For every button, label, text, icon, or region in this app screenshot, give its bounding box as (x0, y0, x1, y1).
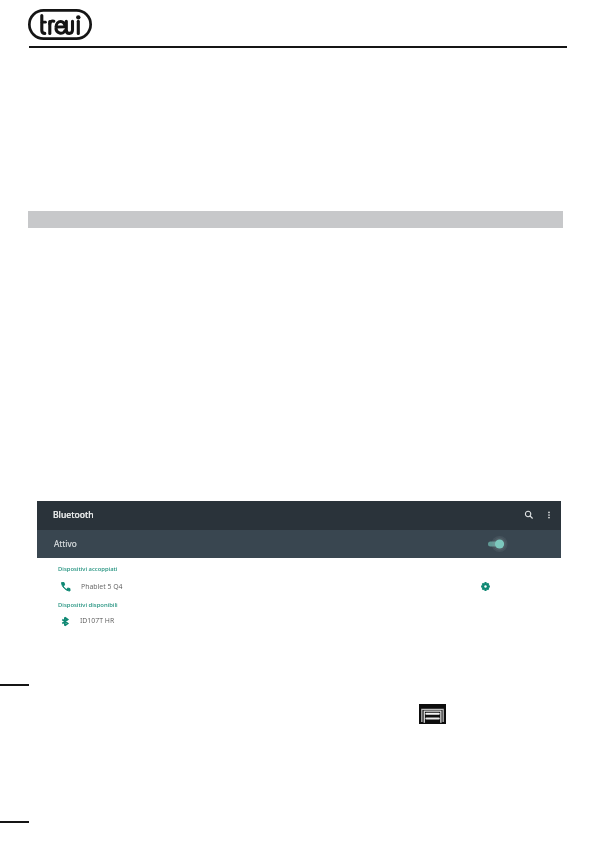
button[interactable]: Attivo (37, 530, 561, 558)
staticText: Dispositivi accoppiati (58, 565, 118, 573)
button[interactable]: Device settings (476, 578, 494, 594)
button[interactable]: Bluetooth (37, 501, 561, 530)
button[interactable]: Phablet 5 Q4 (37, 578, 561, 594)
staticText: Phablet 5 Q4 (81, 582, 123, 591)
button[interactable]: ID107T HR (37, 612, 561, 628)
staticText: ID107T HR (80, 616, 115, 625)
staticText: Dispositivi disponibili (58, 601, 118, 609)
button[interactable]: List view (419, 704, 446, 724)
button[interactable]: Search (520, 506, 537, 523)
staticText: Attivo (54, 538, 77, 549)
button[interactable]: More options (540, 506, 557, 523)
button[interactable]: Bluetooth on off toggle (480, 534, 514, 554)
button[interactable]: Trevi logo (28, 9, 92, 40)
staticText: Bluetooth (53, 509, 94, 521)
